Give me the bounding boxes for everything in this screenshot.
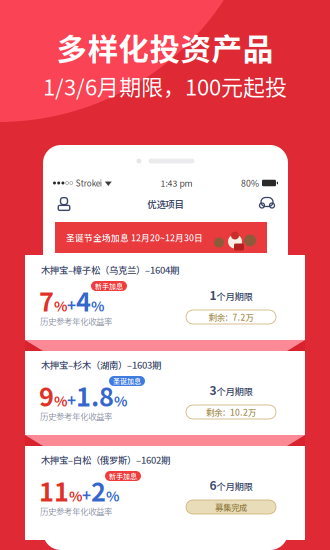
staticText: % xyxy=(106,485,119,505)
staticText: + xyxy=(82,484,91,506)
staticText: % xyxy=(114,390,127,410)
staticText: % xyxy=(54,295,67,315)
staticText: 历史参考年化收益率 xyxy=(40,410,112,422)
staticText: 个月期限 xyxy=(216,289,252,303)
staticText: 个月期限 xyxy=(216,384,252,398)
button[interactable]: 木押宝–樟子松（乌克兰）–1604期 xyxy=(25,255,305,350)
staticText: 木押宝–樟子松（乌克兰）–1604期 xyxy=(41,263,179,276)
staticText: + xyxy=(67,389,76,411)
staticText: 6 xyxy=(209,476,216,493)
staticText: 募集完成 xyxy=(215,501,247,513)
staticText: 新手加息 xyxy=(109,471,137,481)
staticText: % xyxy=(69,485,82,505)
staticText: 圣诞节全场加息 12月20~12月30日 xyxy=(66,231,203,244)
staticText: 9 xyxy=(39,377,54,414)
staticText: 优选项目 xyxy=(147,197,183,211)
staticText: 1.8 xyxy=(76,377,114,414)
staticText: 木押宝–白松（俄罗斯）–1602期 xyxy=(41,453,170,466)
staticText: 历史参考年化收益率 xyxy=(40,505,112,517)
button[interactable]: 木押宝–杉木（湖南）–1603期 xyxy=(25,350,305,445)
staticText: 1/3/6月期限，100元起投 xyxy=(43,70,287,102)
staticText: 个月期限 xyxy=(216,479,252,493)
staticText: 80% xyxy=(241,177,259,189)
staticText: Strokei xyxy=(76,177,102,189)
button[interactable]: 圣诞节全场加息 12月20~12月30日 xyxy=(55,222,267,253)
staticText: 4 xyxy=(76,282,91,319)
staticText: 1 xyxy=(209,286,216,303)
staticText: 历史参考年化收益率 xyxy=(40,315,112,327)
staticText: 3 xyxy=(209,381,216,398)
staticText: 剩余：10.2万 xyxy=(206,406,256,418)
staticText: 木押宝–杉木（湖南）–1603期 xyxy=(41,358,161,371)
staticText: 圣诞加息 xyxy=(113,376,141,386)
staticText: 剩余：7.2万 xyxy=(208,311,253,323)
button[interactable]: Account xyxy=(51,193,77,215)
staticText: 7 xyxy=(39,282,54,319)
staticText: 11 xyxy=(39,472,69,509)
button[interactable]: 木押宝–白松（俄罗斯）–1602期 xyxy=(25,445,305,540)
staticText: % xyxy=(91,295,104,315)
staticText: + xyxy=(67,294,76,316)
staticText: 1:43 pm xyxy=(160,177,192,189)
button[interactable]: Customer service xyxy=(254,193,280,215)
staticText: 多样化投资产品 xyxy=(56,25,273,69)
staticText: 2 xyxy=(91,472,106,509)
staticText: 新手加息 xyxy=(95,281,123,291)
staticText: % xyxy=(54,390,67,410)
